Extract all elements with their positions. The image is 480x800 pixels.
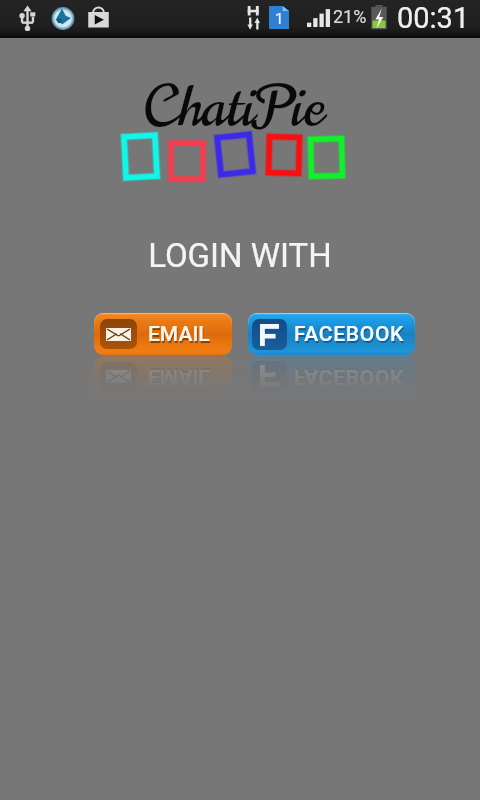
button[interactable]: EMAIL [94, 313, 232, 355]
staticText: 00:31 [397, 1, 470, 35]
button[interactable]: FACEBOOK [248, 313, 415, 355]
staticText: EMAIL [148, 322, 210, 347]
staticText: EMAIL [148, 364, 210, 389]
staticText: LOGIN WITH [148, 236, 332, 275]
staticText: ChatiPie [143, 68, 325, 147]
staticText: FACEBOOK [295, 324, 406, 349]
staticText: FACEBOOK [294, 322, 405, 347]
staticText: FACEBOOK [295, 362, 406, 387]
staticText: EMAIL [149, 362, 211, 387]
staticText: 21% [333, 6, 367, 27]
staticText: 1 [275, 10, 284, 28]
staticText: EMAIL [149, 324, 211, 349]
staticText: FACEBOOK [294, 364, 405, 389]
